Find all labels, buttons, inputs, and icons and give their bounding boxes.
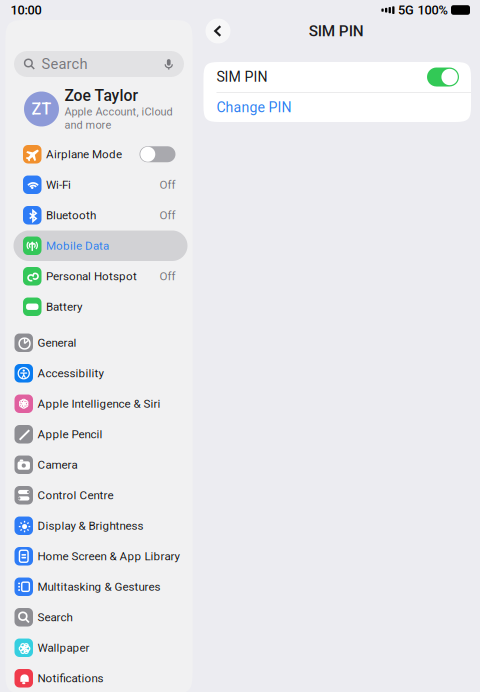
- staticText: Wi-Fi: [46, 178, 71, 192]
- button[interactable]: Wallpaper: [5, 632, 196, 663]
- staticText: Apple Intelligence & Siri: [37, 397, 160, 411]
- staticText: 10:00: [10, 2, 41, 17]
- button[interactable]: Search: [5, 602, 196, 632]
- button[interactable]: Battery: [13, 291, 187, 322]
- staticText: Home Screen & App Library: [37, 549, 179, 563]
- button[interactable]: Accessibility: [5, 358, 196, 388]
- staticText: Control Centre: [37, 488, 113, 502]
- staticText: Notifications: [37, 671, 103, 685]
- staticText: 100%: [417, 2, 447, 17]
- staticText: General: [37, 336, 76, 350]
- staticText: Accessibility: [37, 366, 103, 380]
- staticText: SIM PIN: [216, 69, 267, 85]
- button[interactable]: Back: [205, 18, 230, 43]
- staticText: Bluetooth: [46, 208, 96, 222]
- staticText: Multitasking & Gestures: [37, 580, 160, 594]
- staticText: Apple Pencil: [37, 427, 102, 441]
- staticText: and more: [64, 119, 111, 131]
- button[interactable]: Apple Pencil: [5, 419, 196, 449]
- staticText: Mobile Data: [46, 239, 109, 253]
- staticText: Off: [159, 269, 175, 283]
- staticText: Airplane Mode: [46, 147, 122, 161]
- button[interactable]: Camera: [5, 449, 196, 480]
- button[interactable]: Wi-Fi: [13, 169, 187, 200]
- staticText: SIM PIN: [309, 22, 364, 40]
- button[interactable]: Personal Hotspot: [13, 261, 187, 291]
- button[interactable]: Control Centre: [5, 480, 196, 510]
- button[interactable]: Apple Intelligence & Siri: [5, 388, 196, 419]
- button[interactable]: General: [5, 327, 196, 358]
- button[interactable]: Change PIN: [203, 93, 471, 122]
- staticText: Change PIN: [216, 99, 291, 116]
- staticText: Camera: [37, 458, 77, 472]
- button[interactable]: Home Screen & App Library: [5, 541, 196, 571]
- button[interactable]: Mobile Data: [13, 230, 187, 261]
- staticText: Personal Hotspot: [46, 269, 137, 283]
- staticText: Wallpaper: [37, 641, 89, 655]
- button[interactable]: Multitasking & Gestures: [5, 571, 196, 602]
- staticText: Apple Account, iCloud: [64, 105, 172, 118]
- staticText: Search: [37, 610, 72, 624]
- staticText: Off: [159, 208, 175, 222]
- staticText: 5G: [398, 2, 414, 17]
- button[interactable]: Display & Brightness: [5, 510, 196, 541]
- button[interactable]: Notifications: [5, 663, 196, 692]
- staticText: ZT: [31, 100, 51, 118]
- staticText: Zoe Taylor: [64, 86, 138, 105]
- staticText: Battery: [46, 300, 82, 314]
- button[interactable]: Airplane Mode: [13, 139, 187, 169]
- button[interactable]: Search: [14, 51, 184, 77]
- button[interactable]: Bluetooth: [13, 200, 187, 230]
- staticText: Display & Brightness: [37, 519, 143, 533]
- staticText: Off: [159, 178, 175, 192]
- staticText: Search: [41, 55, 87, 73]
- button[interactable]: ZT: [5, 85, 192, 133]
